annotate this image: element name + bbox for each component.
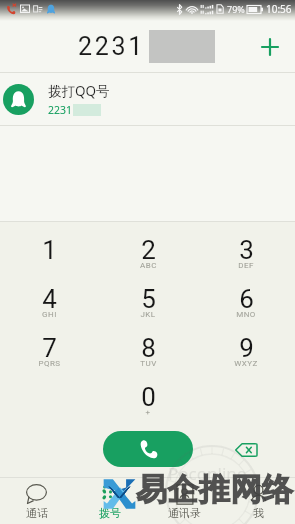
staticText: Poconline [168,462,247,485]
staticText: + [145,408,151,417]
staticText: 0 [141,382,156,412]
staticText: 3 [239,235,254,265]
button[interactable]: Backspace [229,433,263,467]
staticText: 6 [239,284,254,314]
button[interactable]: Add contact [253,30,287,64]
staticText: 我 [253,506,264,520]
button[interactable]: 2 [99,222,197,271]
staticText: ABC [140,261,157,270]
button[interactable]: 拨打QQ号 [0,73,295,125]
staticText: GHI [42,310,57,319]
button[interactable]: 拨号 [73,478,147,524]
staticText: MNO [236,310,256,319]
staticText: 易企推网络 [136,470,294,509]
staticText: 5 [141,284,156,314]
staticText: 拨打QQ号 [48,82,110,100]
staticText: 9 [239,333,254,363]
staticText: 通讯录 [168,506,201,520]
staticText: 10:56 [266,2,292,16]
staticText: TUV [140,359,157,368]
button[interactable]: 1 [0,222,99,271]
button[interactable]: 8 [99,320,197,369]
staticText: 8 [141,333,156,363]
staticText: 1 [42,235,57,265]
button[interactable]: 0 [99,369,197,418]
button[interactable]: 7 [0,320,99,369]
staticText: 79% [227,3,245,15]
button[interactable]: 3 [197,222,295,271]
staticText: 4 [42,284,57,314]
staticText: 7 [42,333,57,363]
button[interactable]: 通讯录 [147,478,221,524]
staticText: 2231 [78,32,146,61]
button[interactable]: 4 [0,271,99,320]
button[interactable]: 6 [197,271,295,320]
staticText: 通话 [26,506,48,520]
staticText: 2231 [48,103,73,117]
staticText: JKL [140,310,156,319]
button[interactable]: Call [103,431,193,467]
staticText: PQRS [38,359,61,368]
staticText: WXYZ [234,359,258,368]
button[interactable]: 通话 [0,478,73,524]
button[interactable]: 9 [197,320,295,369]
button[interactable]: 5 [99,271,197,320]
button[interactable]: 我 [221,478,295,524]
staticText: 2 [141,235,156,265]
staticText: DEF [238,261,254,270]
staticText: 拨号 [99,506,121,520]
